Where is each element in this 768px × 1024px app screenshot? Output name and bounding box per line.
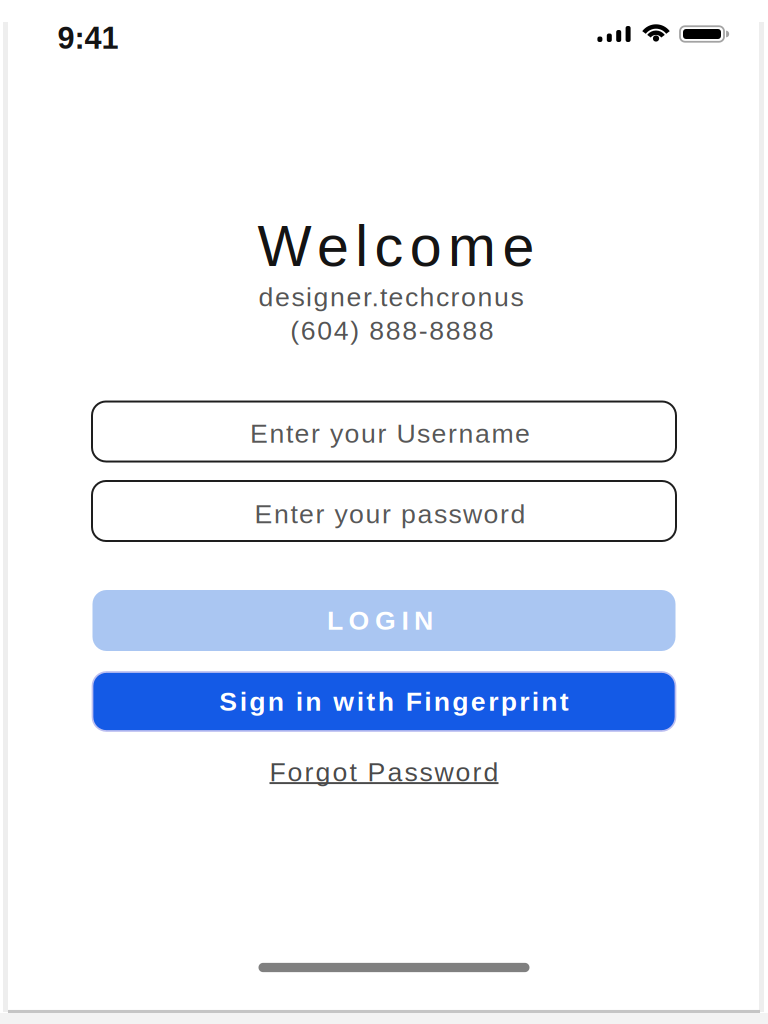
staticText: LOGIN: [327, 606, 433, 635]
button[interactable]: Enter your password: [92, 481, 676, 541]
staticText: Enter your Username: [250, 419, 530, 448]
staticText: Forgot Password: [269, 757, 498, 786]
staticText: designer.techcronus: [258, 282, 523, 311]
staticText: Sign in with Fingerprint: [219, 687, 569, 716]
button[interactable]: Forgot Password: [269, 757, 498, 786]
staticText: Welcome: [258, 215, 534, 277]
staticText: (604) 888-8888: [290, 316, 494, 345]
button[interactable]: LOGIN: [92, 590, 675, 651]
button[interactable]: Home: [258, 963, 529, 972]
staticText: Enter your password: [254, 499, 525, 528]
staticText: 9:41: [57, 21, 118, 55]
button[interactable]: Sign in with Fingerprint: [92, 672, 675, 731]
button[interactable]: Enter your Username: [92, 401, 676, 461]
